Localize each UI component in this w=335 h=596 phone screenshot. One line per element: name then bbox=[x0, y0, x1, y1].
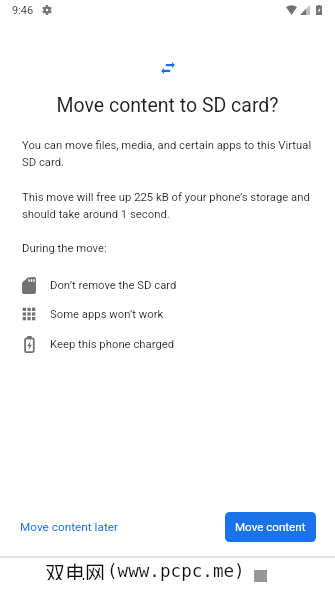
staticText: Move content later bbox=[20, 520, 118, 534]
button[interactable]: Keep this phone charged bbox=[0, 330, 335, 358]
staticText: Don’t remove the SD card bbox=[50, 279, 177, 292]
staticText: 9:46 bbox=[12, 4, 34, 17]
other: Settings bbox=[42, 5, 52, 15]
staticText: During the move: bbox=[22, 242, 107, 255]
staticText: Move content bbox=[235, 520, 306, 534]
button[interactable]: Don’t remove the SD card bbox=[0, 271, 335, 299]
staticText: Some apps won’t work bbox=[50, 308, 164, 321]
staticText: This move will free up 225 kB of your ph… bbox=[22, 191, 316, 221]
button[interactable]: Move content bbox=[225, 512, 316, 542]
button[interactable]: Move content later bbox=[12, 512, 126, 542]
staticText: You can move files, media, and certain a… bbox=[22, 139, 316, 169]
staticText: Keep this phone charged bbox=[50, 338, 175, 351]
other: Transfer bbox=[161, 63, 175, 73]
button[interactable]: Some apps won’t work bbox=[0, 300, 335, 328]
staticText: 双电网 bbox=[45, 558, 105, 580]
staticText: Move content to SD card? bbox=[0, 94, 335, 117]
staticText: (www.pcpc.me) bbox=[107, 561, 245, 581]
